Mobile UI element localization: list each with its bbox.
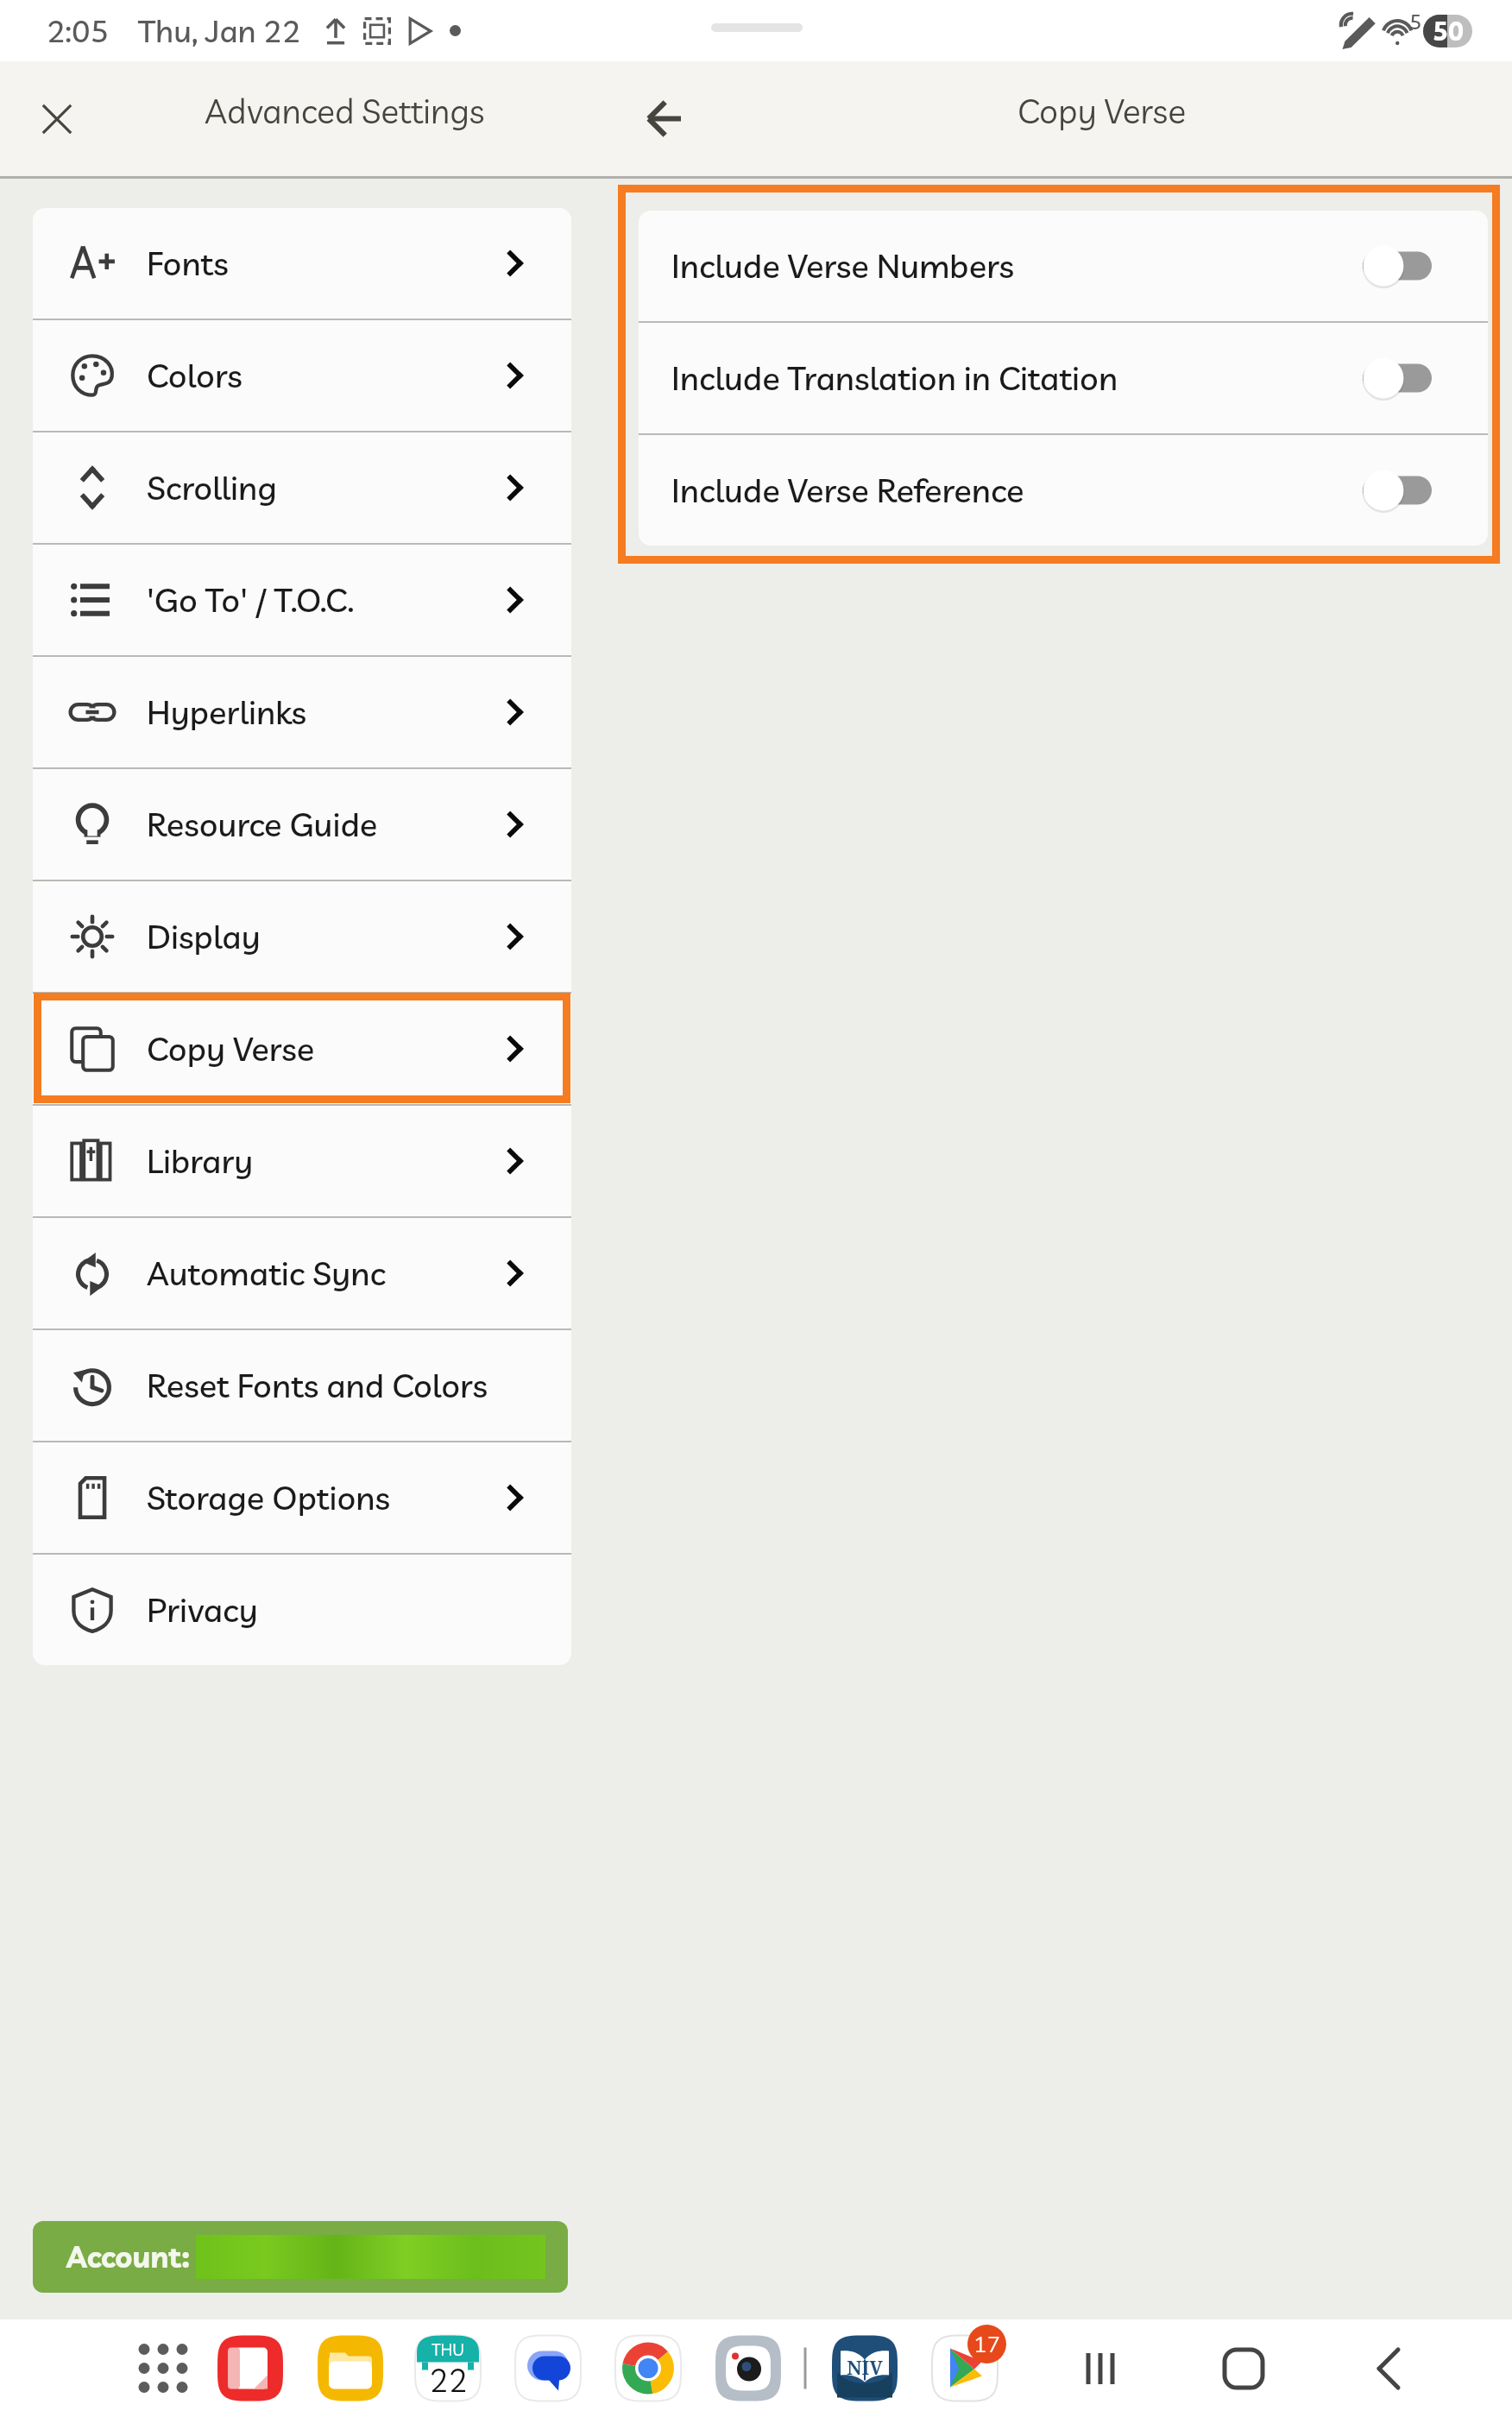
staticText: THU (432, 2339, 464, 2360)
button[interactable]: Account: (33, 2221, 568, 2293)
staticText: Fonts (147, 243, 229, 284)
button[interactable]: Calendar (413, 2334, 482, 2403)
staticText: 'Go To' / T.O.C. (147, 579, 355, 621)
staticText: 17 (973, 2330, 1001, 2358)
staticText: Privacy (147, 1589, 258, 1631)
button[interactable]: Copy Verse (33, 994, 571, 1104)
button[interactable]: Scrolling (33, 432, 571, 543)
staticText: Storage Options (147, 1477, 390, 1518)
button[interactable]: Back (629, 84, 698, 153)
button[interactable]: Resource Guide (33, 769, 571, 880)
button[interactable]: Include Verse Reference (639, 435, 1488, 546)
button[interactable]: Recents (1066, 2334, 1135, 2403)
staticText: 5 (1409, 9, 1422, 35)
staticText: Account: (66, 2238, 190, 2275)
button[interactable]: All apps (129, 2334, 198, 2403)
button[interactable]: Colors (33, 320, 571, 431)
button[interactable]: Back (1354, 2334, 1423, 2403)
button[interactable]: Include Translation in Citation (639, 323, 1488, 433)
button[interactable]: Hyperlinks (33, 657, 571, 767)
button[interactable]: Messages (513, 2334, 583, 2403)
staticText: Resource Guide (147, 804, 378, 845)
staticText: Scrolling (147, 467, 277, 508)
staticText: NIV (847, 2354, 883, 2380)
button[interactable]: Samsung Notes (216, 2334, 285, 2403)
staticText: Include Translation in Citation (671, 357, 1118, 399)
button[interactable]: Reset Fonts and Colors (33, 1330, 571, 1441)
staticText: 50 (1433, 15, 1464, 47)
staticText: Library (147, 1140, 254, 1182)
staticText: Include Verse Reference (671, 470, 1024, 511)
button[interactable]: My Files (316, 2334, 385, 2403)
staticText: Copy Verse (1017, 90, 1187, 132)
staticText: Advanced Settings (205, 90, 485, 132)
staticText: Reset Fonts and Colors (147, 1365, 488, 1406)
button[interactable]: Storage Options (33, 1442, 571, 1553)
button[interactable]: Play Store (930, 2334, 999, 2403)
button[interactable]: Close (22, 85, 91, 154)
staticText: Colors (147, 355, 243, 396)
button[interactable]: Camera (714, 2334, 783, 2403)
staticText: Display (147, 916, 261, 957)
button[interactable]: Privacy (33, 1555, 571, 1665)
staticText: Include Verse Numbers (671, 245, 1015, 287)
button[interactable]: Display (33, 881, 571, 992)
button[interactable]: Include Verse Numbers (639, 211, 1488, 321)
staticText: 2:05 (47, 11, 110, 50)
button[interactable]: Fonts (33, 208, 571, 319)
button[interactable]: Automatic Sync (33, 1218, 571, 1328)
staticText: 22 (429, 2360, 468, 2400)
staticText: Hyperlinks (147, 691, 307, 733)
button[interactable]: Library (33, 1106, 571, 1216)
staticText: Copy Verse (147, 1028, 315, 1070)
staticText: Automatic Sync (147, 1253, 387, 1294)
button[interactable]: Chrome (614, 2334, 683, 2403)
button[interactable]: 'Go To' / T.O.C. (33, 545, 571, 655)
button[interactable]: NIV Bible (830, 2334, 899, 2403)
staticText: Thu, Jan 22 (138, 11, 301, 50)
button[interactable]: Home (1209, 2334, 1278, 2403)
